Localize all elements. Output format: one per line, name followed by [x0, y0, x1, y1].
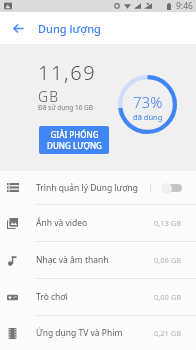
staticText: 0,06 GB — [154, 255, 182, 265]
staticText: 0,21 GB — [154, 328, 182, 338]
button[interactable]: Nhạc và âm thanh — [0, 242, 196, 278]
staticText: Nhạc và âm thanh — [36, 254, 109, 266]
staticText: GB — [38, 87, 60, 106]
staticText: 73% — [133, 92, 163, 112]
button[interactable]: Trình quản lý Dung lượng — [0, 171, 196, 204]
button[interactable]: Back — [4, 14, 32, 42]
button[interactable]: Ánh và video — [0, 205, 196, 241]
button[interactable]: Trình quản lý Dung lượng toggle — [161, 182, 182, 194]
staticText: 11,69 — [38, 59, 97, 86]
button[interactable]: Trò chơi — [0, 279, 196, 315]
staticText: Ánh và video — [36, 217, 88, 229]
button[interactable]: Ứng dụng TV và Phim — [0, 316, 196, 350]
staticText: Dung lượng — [38, 21, 101, 36]
staticText: Trò chơi — [36, 291, 68, 303]
staticText: 9:46 — [176, 0, 193, 12]
staticText: 0,00 GB — [154, 292, 182, 302]
staticText: đã dùng — [133, 112, 163, 122]
staticText: Đã sử dụng 16 GB — [38, 103, 94, 112]
staticText: GIẢI PHÓNG DUNG LƯỢNG — [47, 129, 102, 151]
button[interactable]: GIẢI PHÓNG DUNG LƯỢNG — [39, 126, 109, 154]
staticText: Ứng dụng TV và Phim — [36, 327, 123, 339]
staticText: 0,13 GB — [154, 218, 182, 228]
staticText: Trình quản lý Dung lượng — [36, 182, 138, 194]
